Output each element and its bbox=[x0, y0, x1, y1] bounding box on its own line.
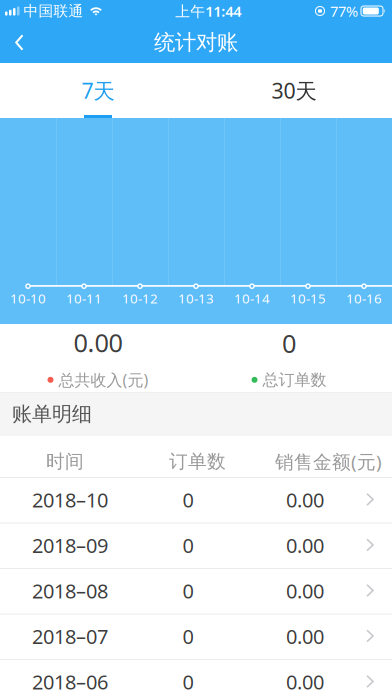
staticText: 30天 bbox=[271, 76, 316, 105]
staticText: 0 bbox=[182, 577, 193, 604]
staticText: 10-13 bbox=[178, 289, 214, 307]
staticText: 上午11:44 bbox=[175, 1, 241, 21]
staticText: 统计对账 bbox=[154, 29, 238, 56]
button[interactable]: 返回 bbox=[0, 23, 24, 62]
staticText: 0.00 bbox=[286, 623, 324, 650]
staticText: 2018–10 bbox=[32, 486, 108, 513]
staticText: 2018–06 bbox=[32, 668, 108, 695]
button[interactable]: 2018–09 bbox=[0, 522, 392, 568]
staticText: 10-10 bbox=[10, 289, 46, 307]
staticText: 账单明细 bbox=[12, 402, 92, 426]
staticText: 0.00 bbox=[286, 486, 324, 513]
staticText: 0 bbox=[282, 326, 296, 360]
staticText: 0 bbox=[182, 668, 193, 695]
button[interactable]: 2018–10 bbox=[0, 477, 392, 522]
button[interactable]: 2018–08 bbox=[0, 568, 392, 613]
staticText: 10-14 bbox=[234, 289, 270, 307]
staticText: 7天 bbox=[81, 76, 114, 105]
staticText: 2018–09 bbox=[32, 532, 108, 559]
staticText: 10-12 bbox=[122, 289, 158, 307]
staticText: 时间 bbox=[46, 450, 84, 473]
staticText: 订单数 bbox=[169, 450, 226, 473]
staticText: 销售金额(元) bbox=[275, 449, 382, 474]
staticText: 0 bbox=[182, 623, 193, 650]
staticText: 10-15 bbox=[290, 289, 326, 307]
staticText: 0.00 bbox=[286, 668, 324, 695]
staticText: 0.00 bbox=[73, 326, 122, 359]
staticText: 总订单数 bbox=[262, 370, 326, 390]
staticText: 0 bbox=[182, 486, 193, 513]
staticText: 10-16 bbox=[346, 289, 382, 307]
staticText: 总共收入(元) bbox=[58, 369, 148, 390]
button[interactable]: 7天 bbox=[0, 63, 196, 118]
staticText: 2018–07 bbox=[32, 623, 108, 650]
staticText: 0.00 bbox=[286, 532, 324, 559]
staticText: 中国联通 bbox=[23, 2, 83, 20]
staticText: 77% bbox=[330, 1, 358, 21]
staticText: 2018–08 bbox=[32, 577, 108, 604]
button[interactable]: 30天 bbox=[196, 63, 392, 118]
staticText: 0 bbox=[182, 532, 193, 559]
button[interactable]: 2018–07 bbox=[0, 613, 392, 659]
staticText: 10-11 bbox=[66, 289, 102, 307]
staticText: 0.00 bbox=[286, 577, 324, 604]
button[interactable]: 2018–06 bbox=[0, 659, 392, 696]
